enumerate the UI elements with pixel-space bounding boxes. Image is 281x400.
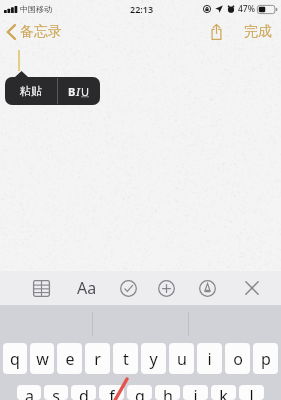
button[interactable]: d [71, 385, 96, 400]
staticText: Aa [77, 277, 97, 299]
staticText: i [207, 348, 212, 370]
button[interactable]: Aa [74, 271, 100, 305]
button[interactable]: k [211, 385, 236, 400]
button[interactable]: 备忘录 [0, 19, 70, 48]
staticText: 47% [238, 3, 255, 15]
button[interactable]: t [113, 343, 138, 374]
button[interactable]: p [253, 343, 278, 374]
button[interactable]: y [141, 343, 166, 374]
button[interactable]: 完成 [240, 19, 279, 45]
staticText: 备忘录 [20, 23, 62, 41]
button[interactable]: Table [27, 274, 55, 302]
button[interactable]: Add attachment [152, 274, 180, 302]
staticText: k [219, 385, 228, 400]
button[interactable]: j [183, 385, 208, 400]
staticText: q [10, 348, 20, 370]
button[interactable]: 粘贴 [5, 77, 57, 105]
button[interactable]: q [3, 343, 27, 374]
staticText: 中国移动 [20, 4, 52, 14]
staticText: j [193, 385, 198, 400]
staticText: w [36, 348, 49, 370]
staticText: s [52, 385, 60, 400]
staticText: g [135, 385, 145, 400]
button[interactable]: B [58, 77, 100, 105]
button[interactable]: Checklist [114, 274, 142, 302]
staticText: p [261, 348, 271, 370]
button[interactable]: r [85, 343, 110, 374]
staticText: r [94, 348, 101, 370]
button[interactable]: s [44, 385, 68, 400]
button[interactable]: e [57, 343, 82, 374]
staticText: 22:13 [130, 3, 154, 15]
button[interactable]: Markup [193, 274, 221, 302]
staticText: f [109, 385, 115, 400]
staticText: 粘贴 [20, 84, 42, 98]
staticText: t [123, 348, 129, 370]
staticText: y [149, 348, 158, 370]
staticText: U [81, 84, 90, 99]
button[interactable]: Close [238, 274, 266, 302]
button[interactable]: f [99, 385, 124, 400]
staticText: o [233, 348, 243, 370]
button[interactable]: l [239, 385, 264, 400]
button[interactable]: u [169, 343, 194, 374]
button[interactable]: o [225, 343, 250, 374]
staticText: e [65, 348, 75, 370]
button[interactable]: i [197, 343, 222, 374]
button[interactable]: Share [206, 19, 227, 45]
staticText: d [79, 385, 89, 400]
button[interactable]: a [17, 385, 41, 400]
staticText: I [76, 84, 81, 99]
button[interactable]: h [155, 385, 180, 400]
staticText: a [25, 385, 34, 400]
button[interactable]: w [30, 343, 54, 374]
staticText: 完成 [244, 23, 272, 41]
staticText: B [68, 84, 76, 99]
staticText: u [177, 348, 187, 370]
staticText: h [163, 385, 173, 400]
button[interactable]: g [127, 385, 152, 400]
staticText: l [249, 385, 254, 400]
